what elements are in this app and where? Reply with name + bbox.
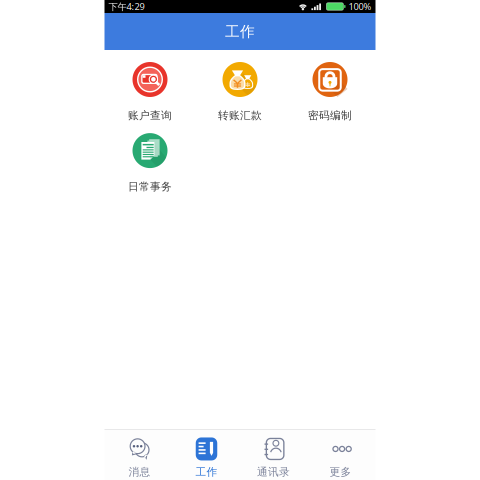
staticText: 密码编制 — [308, 109, 352, 122]
staticText: 通讯录 — [257, 465, 290, 478]
button[interactable]: 消息 — [106, 430, 173, 480]
button[interactable]: 更多 — [307, 430, 374, 480]
staticText: 更多 — [329, 465, 351, 478]
staticText: 工作 — [225, 22, 255, 40]
staticText: 消息 — [128, 465, 150, 478]
button[interactable]: 通讯录 — [240, 430, 307, 480]
staticText: 账户查询 — [128, 109, 172, 122]
button[interactable]: 转账汇款 — [195, 62, 285, 122]
button[interactable]: 工作 — [104, 13, 375, 50]
staticText: 100% — [348, 0, 371, 13]
staticText: 下午4:29 — [108, 0, 144, 13]
staticText: 转账汇款 — [218, 109, 262, 122]
staticText: 工作 — [195, 465, 217, 478]
button[interactable]: 日常事务 — [105, 133, 195, 193]
button[interactable]: 工作 — [173, 430, 240, 480]
staticText: 日常事务 — [128, 180, 172, 193]
button[interactable]: 密码编制 — [285, 62, 375, 122]
button[interactable]: 账户查询 — [105, 62, 195, 122]
